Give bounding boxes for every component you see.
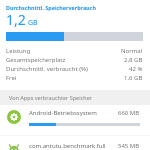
button[interactable]: Android system	[0, 105, 150, 138]
button[interactable]: Gesamtspeicherplatz	[0, 55, 150, 64]
other: App icon	[7, 142, 21, 150]
staticText: Frei	[6, 74, 17, 82]
staticText: Gesamtspeicherplatz	[6, 56, 66, 64]
staticText: Durchschnittl. verbraucht (%)	[6, 65, 88, 73]
other: Android system	[7, 110, 21, 124]
staticText: Durchschnittl. Speicherverbrauch	[6, 4, 96, 11]
staticText: Von Apps verbrauchter Speicher	[9, 94, 93, 101]
staticText: 545 MB	[118, 142, 140, 150]
button[interactable]: Leistung	[0, 46, 150, 55]
button[interactable]: App icon	[0, 138, 150, 150]
staticText: com.antutu.benchmark.full	[29, 142, 118, 150]
staticText: Android-Betriebssystem	[29, 109, 118, 117]
button[interactable]: Durchschnittl. verbraucht (%)	[0, 64, 150, 73]
staticText: 660 MB	[118, 109, 140, 117]
staticText: 1,6 GB	[124, 74, 143, 82]
staticText: 42 %	[129, 65, 143, 73]
staticText: 1,2	[6, 10, 26, 29]
staticText: Normal	[121, 47, 143, 55]
staticText: Leistung	[6, 47, 31, 55]
staticText: GB	[28, 18, 38, 28]
staticText: 2,8 GB	[124, 56, 143, 64]
button[interactable]: Frei	[0, 73, 150, 82]
